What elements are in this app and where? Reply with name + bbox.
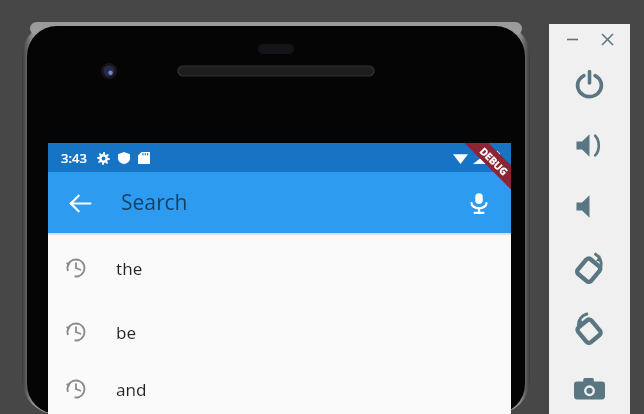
button[interactable]: and xyxy=(48,364,511,414)
button[interactable]: be xyxy=(48,300,511,364)
button[interactable]: Take screenshot xyxy=(549,359,630,414)
button[interactable]: Volume down xyxy=(549,176,630,237)
button[interactable]: Search xyxy=(102,172,457,233)
button[interactable]: Close xyxy=(596,28,618,50)
button[interactable]: Rotate right xyxy=(549,298,630,359)
button[interactable]: Voice search xyxy=(457,181,501,225)
staticText: the xyxy=(116,257,143,280)
button[interactable]: the xyxy=(48,236,511,300)
button[interactable]: Minimize xyxy=(561,28,583,50)
staticText: DEBUG xyxy=(477,144,511,178)
staticText: be xyxy=(116,321,137,344)
button[interactable]: Rotate left xyxy=(549,237,630,298)
staticText: Search xyxy=(121,188,188,217)
staticText: and xyxy=(116,378,147,401)
staticText: 3:43 xyxy=(61,149,87,167)
button[interactable]: Volume up xyxy=(549,115,630,176)
button[interactable]: Power xyxy=(549,54,630,115)
button[interactable]: Back xyxy=(58,181,102,225)
